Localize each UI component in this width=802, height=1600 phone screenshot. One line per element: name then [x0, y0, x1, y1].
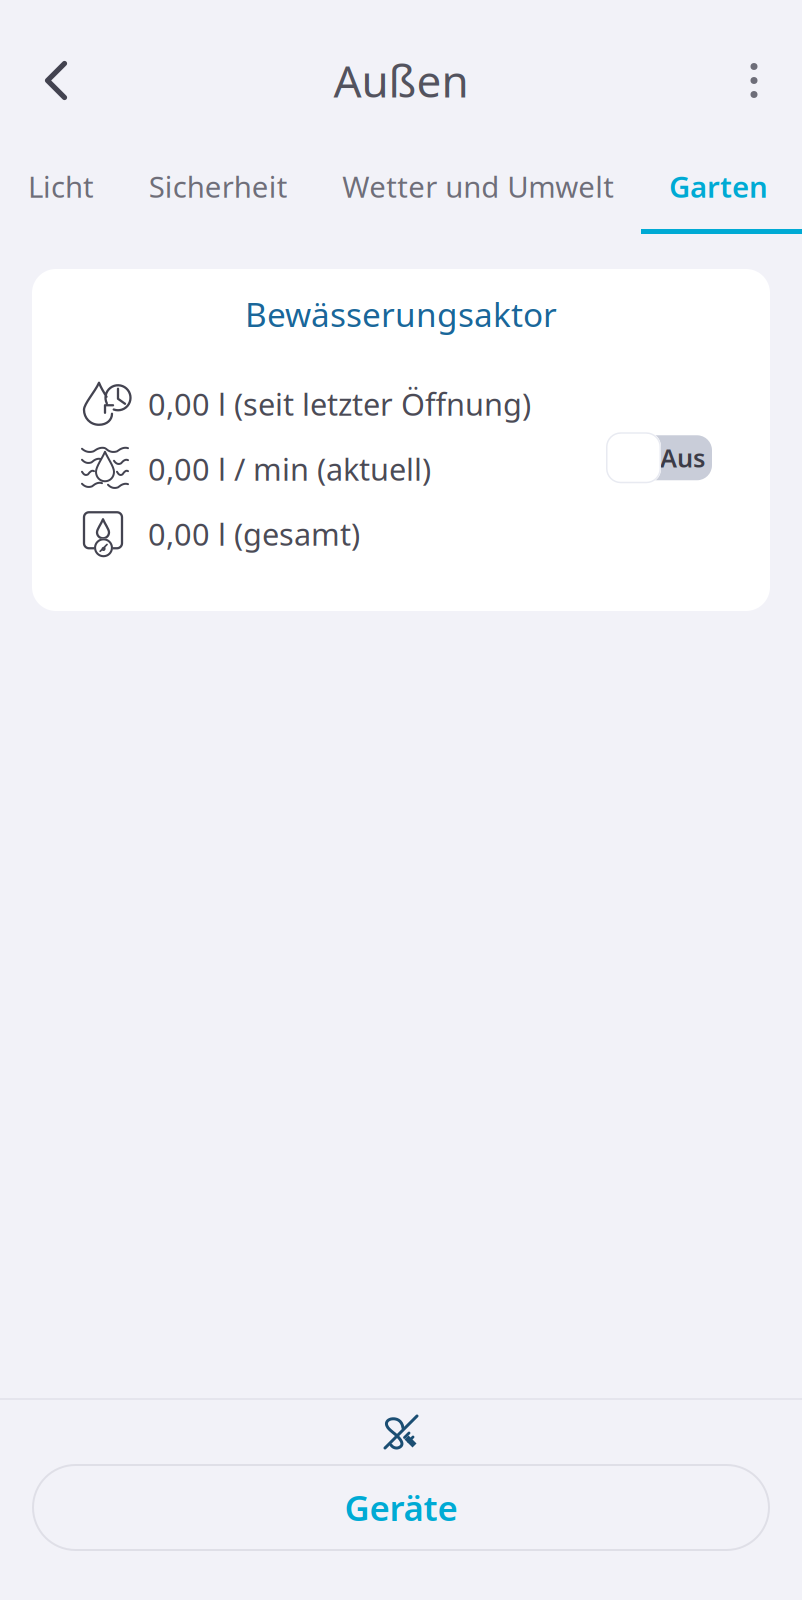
staticText: Wetter und Umwelt	[342, 167, 614, 206]
staticText: Bewässerungsaktor	[245, 292, 557, 336]
button[interactable]: Garten	[669, 167, 768, 206]
staticText: Garten	[669, 167, 768, 206]
button[interactable]: Geräte	[32, 1464, 770, 1551]
staticText: Licht	[28, 167, 94, 206]
staticText: Aus	[660, 441, 705, 474]
staticText: 0,00 l (gesamt)	[148, 513, 360, 554]
button[interactable]: Licht	[28, 167, 94, 206]
button[interactable]: Wetter und Umwelt	[342, 167, 614, 206]
staticText: Außen	[333, 51, 468, 110]
button[interactable]: Sicherheit	[149, 167, 288, 206]
button[interactable]: More options	[723, 49, 785, 111]
staticText: 0,00 l (seit letzter Öffnung)	[148, 383, 531, 424]
button[interactable]: Aus	[606, 432, 712, 483]
staticText: Sicherheit	[149, 167, 288, 206]
button[interactable]: Device disconnected	[370, 1412, 432, 1452]
staticText: 0,00 l / min (aktuell)	[148, 448, 431, 489]
staticText: Geräte	[344, 1484, 457, 1530]
button[interactable]: Back	[25, 49, 87, 111]
